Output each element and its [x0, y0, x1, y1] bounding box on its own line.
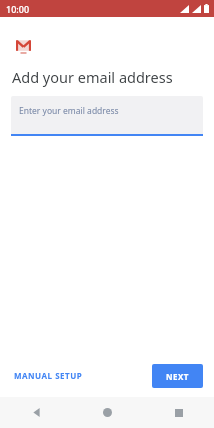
staticText: Enter your email address [19, 105, 119, 117]
button[interactable]: Enter your email address [11, 96, 203, 136]
button[interactable]: MANUAL SETUP [8, 363, 89, 388]
staticText: Add your email address [12, 67, 173, 87]
staticText: NEXT [166, 371, 189, 382]
button[interactable]: Recent apps [143, 397, 214, 428]
staticText: 10:00 [6, 3, 30, 15]
button[interactable]: Home [72, 397, 143, 428]
staticText: MANUAL SETUP [14, 370, 83, 381]
button[interactable]: Back [0, 397, 72, 428]
button[interactable]: NEXT [152, 364, 203, 388]
